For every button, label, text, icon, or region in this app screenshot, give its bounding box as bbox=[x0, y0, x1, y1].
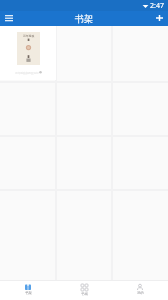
staticText: 百年孤独 bbox=[23, 34, 35, 38]
staticText: 2:47 bbox=[150, 1, 164, 11]
staticText: 书架 bbox=[25, 291, 32, 295]
button[interactable]: 我的 bbox=[112, 281, 168, 300]
button[interactable]: 书城 bbox=[56, 281, 112, 300]
staticText: 书城 bbox=[81, 292, 88, 296]
button[interactable]: Add bbox=[151, 11, 168, 26]
staticText: 我的 bbox=[137, 291, 144, 295]
staticText: 书架 bbox=[75, 13, 93, 24]
staticText: 百年孤独加西亚马尔 bbox=[15, 71, 39, 74]
button[interactable]: Menu bbox=[0, 11, 17, 26]
button[interactable]: 百年孤独 bbox=[0, 26, 56, 80]
button[interactable]: 书架 bbox=[0, 281, 56, 300]
